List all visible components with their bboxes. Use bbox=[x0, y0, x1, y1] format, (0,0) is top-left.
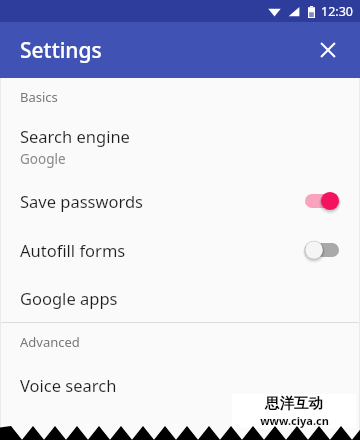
button[interactable]: Search engine bbox=[1, 116, 359, 176]
staticText: 思洋互动 bbox=[265, 394, 323, 412]
staticText: Settings bbox=[20, 36, 102, 65]
button[interactable]: Autofill forms bbox=[1, 225, 359, 274]
staticText: Save passwords bbox=[20, 190, 303, 212]
staticText: Voice search bbox=[20, 374, 117, 396]
staticText: Advanced bbox=[20, 333, 80, 351]
staticText: Basics bbox=[20, 88, 58, 106]
button[interactable]: Close settings bbox=[310, 32, 346, 68]
staticText: Google apps bbox=[20, 287, 118, 309]
button[interactable]: Save passwords bbox=[1, 176, 359, 225]
button[interactable]: Google apps bbox=[1, 274, 359, 322]
staticText: Google bbox=[20, 150, 66, 168]
button[interactable]: Voice search bbox=[1, 361, 359, 409]
staticText: www.ciya.cn bbox=[260, 413, 329, 428]
staticText: Autofill forms bbox=[20, 239, 303, 261]
staticText: Search engine bbox=[20, 125, 130, 147]
staticText: 12:30 bbox=[321, 3, 353, 20]
